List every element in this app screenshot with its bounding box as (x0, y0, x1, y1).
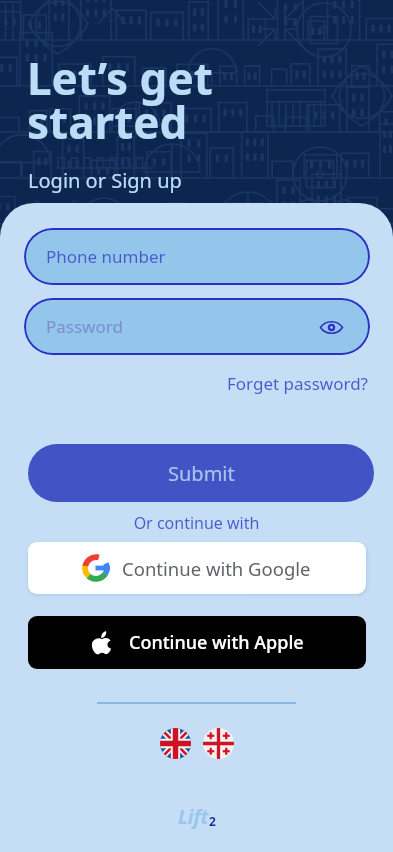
button[interactable]: Continue with Apple (28, 616, 366, 669)
button[interactable]: Forget password? (227, 372, 368, 395)
staticText: Continue with Google (122, 556, 311, 581)
staticText: Phone number (46, 245, 166, 268)
button[interactable]: Continue with Google (28, 542, 366, 594)
button[interactable]: Georgian (203, 728, 234, 759)
staticText: Password (46, 315, 123, 338)
button[interactable]: Phone number (24, 228, 370, 285)
button[interactable]: Submit (28, 444, 374, 502)
staticText: Forget password? (227, 372, 368, 395)
button[interactable]: English (160, 728, 191, 759)
staticText: Continue with Apple (129, 630, 304, 655)
staticText: Lift (178, 804, 209, 830)
staticText: Submit (168, 460, 235, 487)
staticText: 2 (209, 813, 216, 829)
staticText: started (27, 92, 188, 152)
staticText: Or continue with (0, 512, 393, 534)
staticText: Let’s get (27, 48, 213, 108)
button[interactable]: Password (24, 298, 370, 355)
staticText: Login or Sign up (28, 167, 182, 194)
button[interactable]: Show password (316, 312, 346, 342)
